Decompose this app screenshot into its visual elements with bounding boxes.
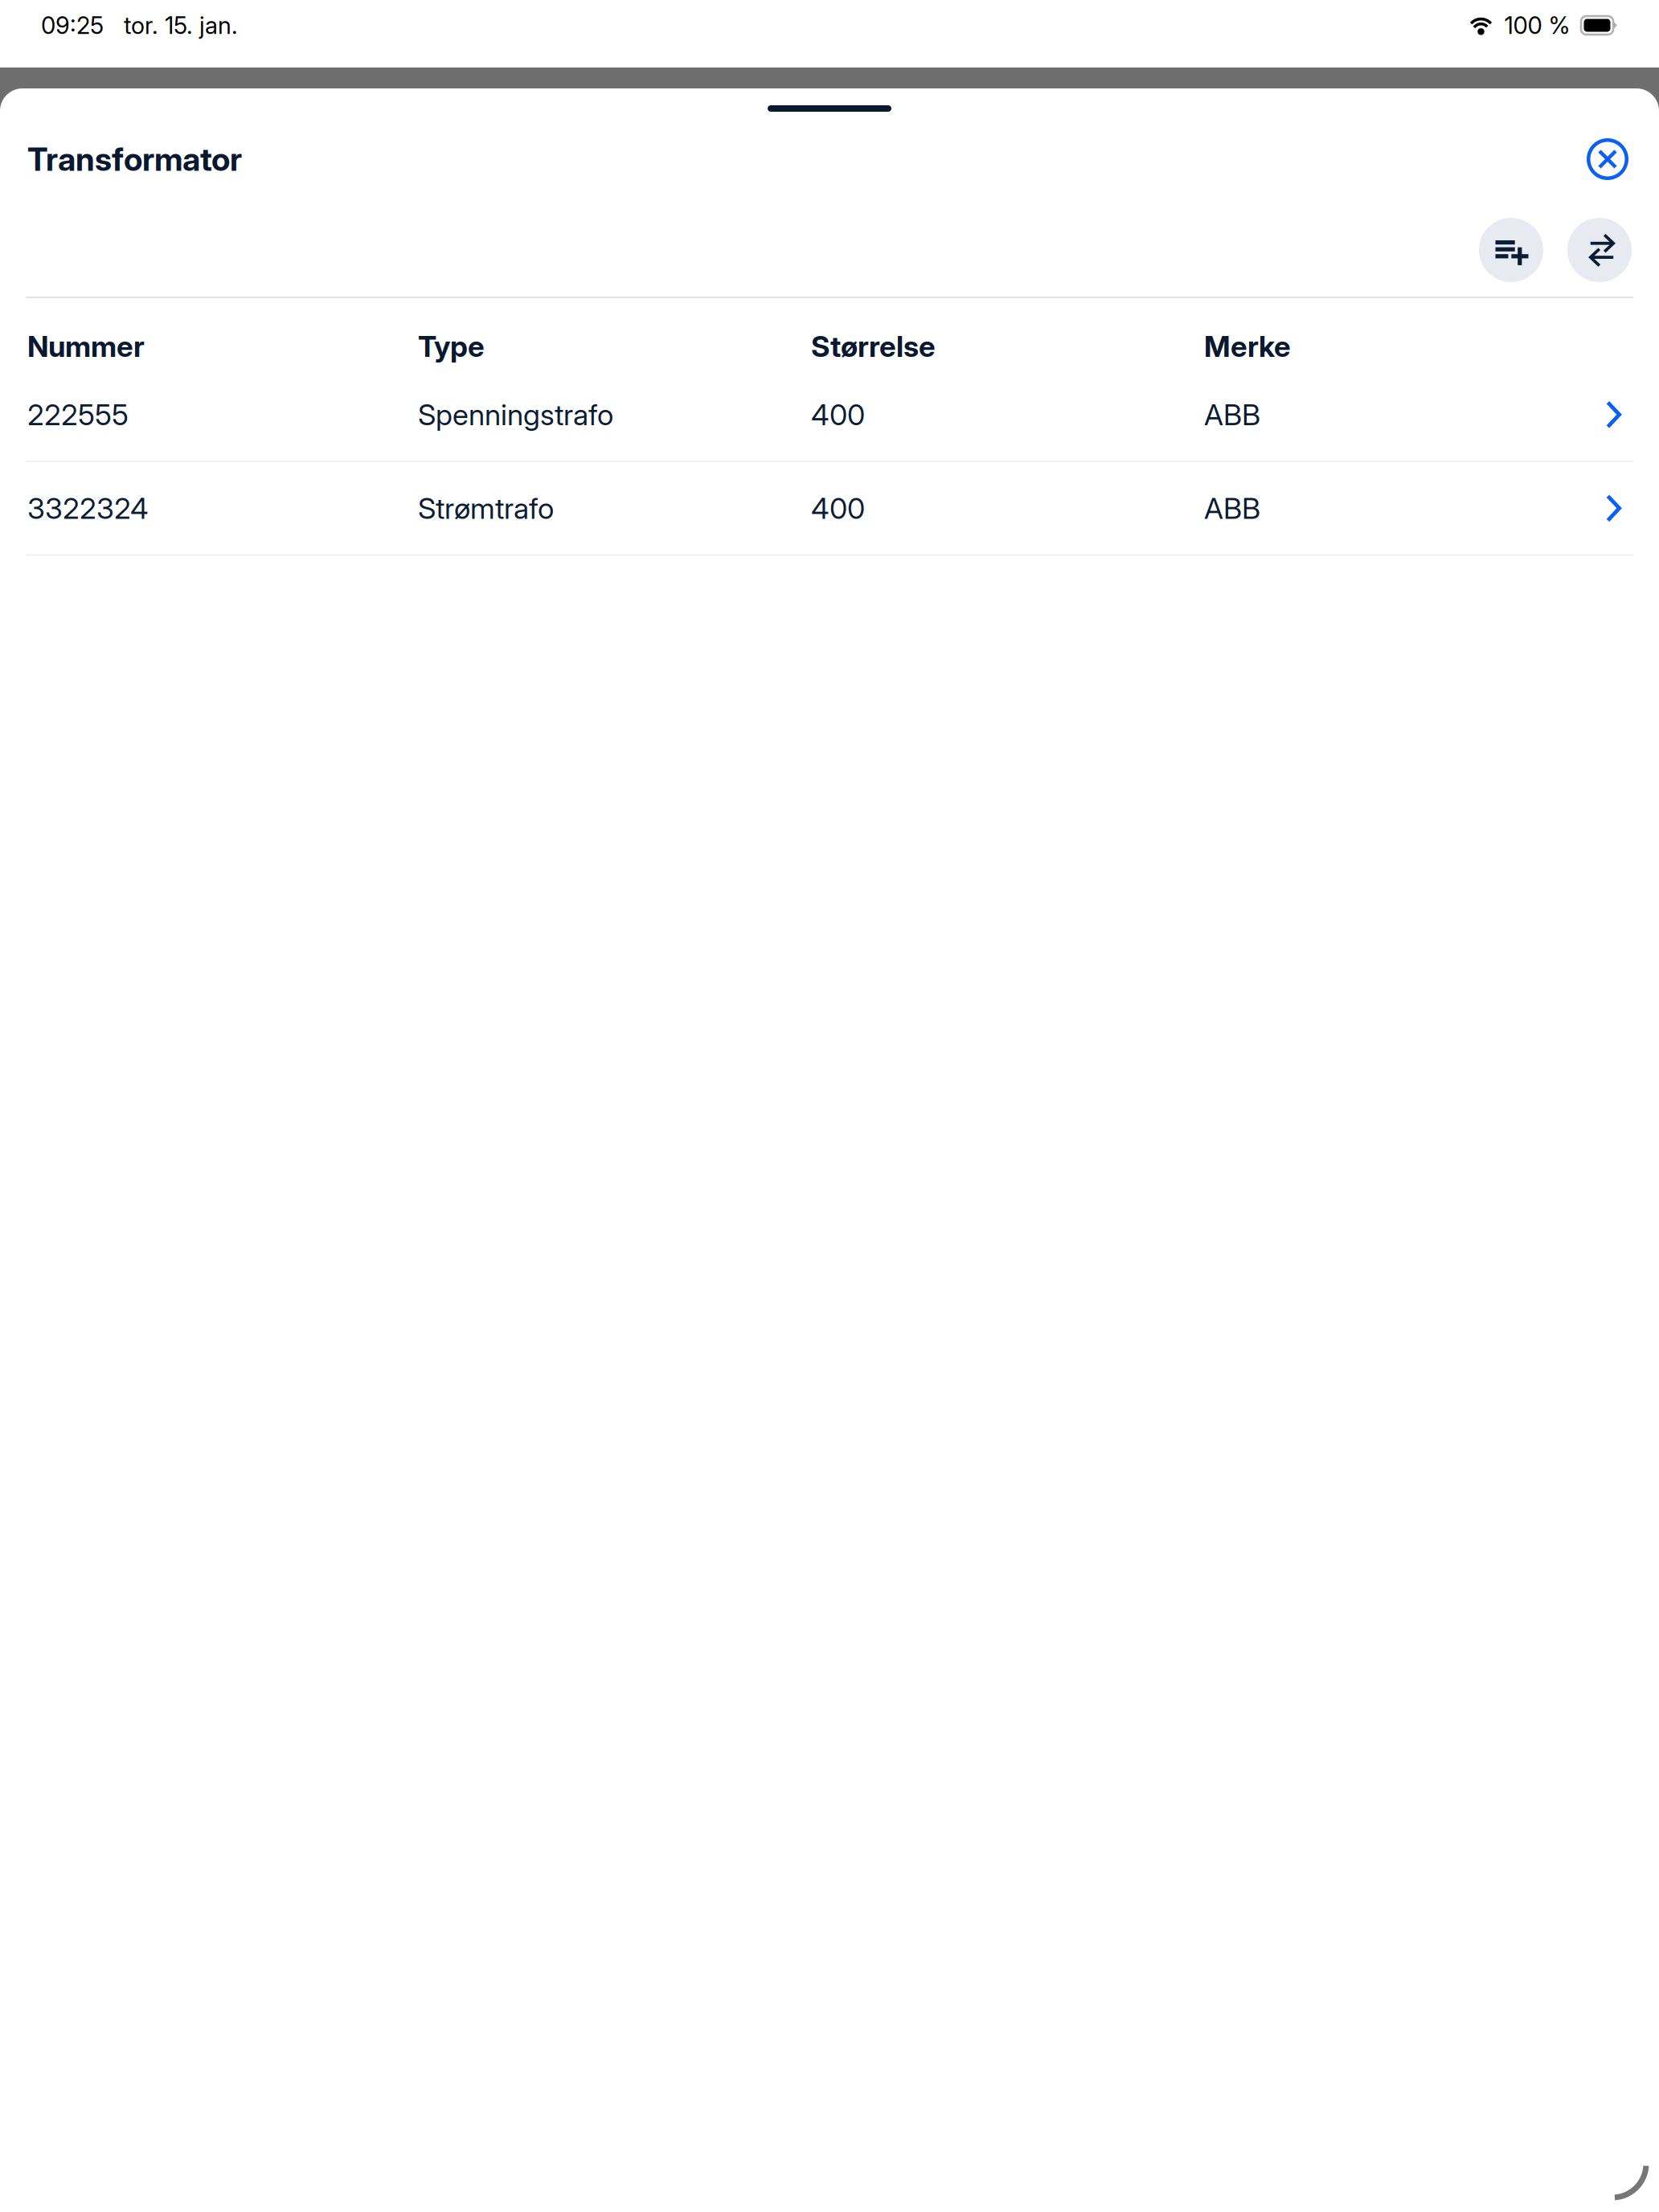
staticText: Spenningstrafo	[418, 397, 613, 432]
staticText: Type	[418, 329, 485, 364]
staticText: Transformator	[27, 140, 242, 179]
staticText: 222555	[27, 397, 129, 432]
staticText: tor. 15. jan.	[124, 11, 238, 40]
staticText: Størrelse	[811, 329, 936, 364]
button[interactable]: Bytt	[1567, 218, 1632, 282]
staticText: 400	[811, 491, 865, 526]
staticText: ABB	[1204, 397, 1260, 432]
button[interactable]: Lukk	[1587, 138, 1628, 180]
button[interactable]: Legg til	[1479, 218, 1543, 282]
button[interactable]: 222555	[0, 369, 1659, 461]
staticText: Nummer	[27, 329, 145, 364]
button[interactable]: 3322324	[0, 462, 1659, 554]
staticText: Strømtrafo	[418, 491, 554, 526]
staticText: 100 %	[1504, 11, 1570, 40]
staticText: Merke	[1204, 329, 1291, 364]
staticText: 400	[811, 397, 865, 432]
staticText: 3322324	[27, 491, 149, 526]
staticText: ABB	[1204, 491, 1260, 526]
staticText: 09:25	[41, 11, 104, 40]
